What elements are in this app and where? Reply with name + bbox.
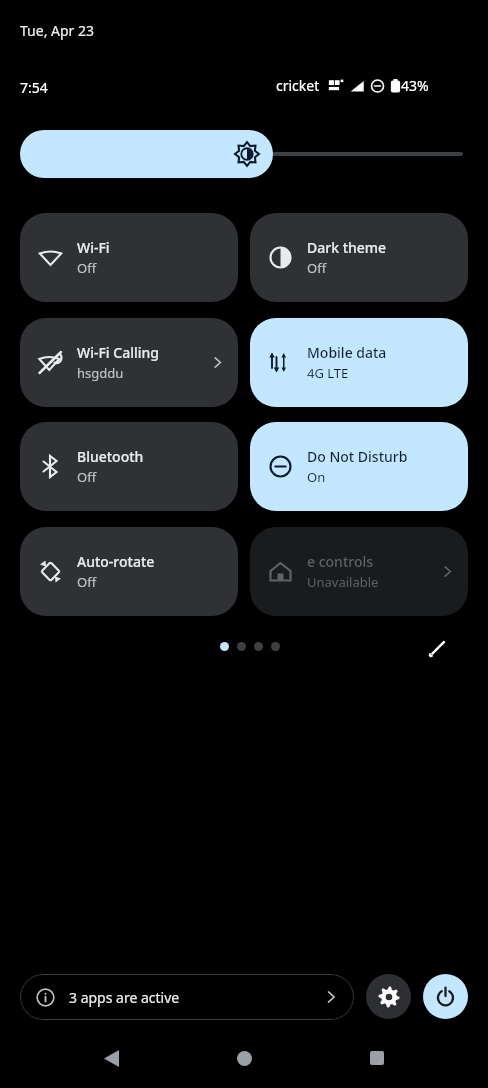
button[interactable]: Settings xyxy=(366,974,411,1019)
button[interactable]: Edit tiles xyxy=(420,630,456,666)
button[interactable]: e controls xyxy=(250,527,468,616)
button[interactable]: Power xyxy=(423,974,468,1019)
staticText: hsgddu xyxy=(77,364,124,382)
button[interactable]: Home xyxy=(211,1036,277,1080)
button[interactable]: Wi-Fi Calling xyxy=(20,318,238,407)
button[interactable]: Back xyxy=(78,1036,144,1080)
staticText: Wi-Fi xyxy=(77,238,110,257)
staticText: Do Not Disturb xyxy=(307,447,408,466)
staticText: Off xyxy=(77,573,97,591)
staticText: Off xyxy=(77,259,97,277)
button[interactable]: Do Not Disturb xyxy=(250,422,468,511)
staticText: 3 apps are active xyxy=(69,988,180,1007)
staticText: Tue, Apr 23 xyxy=(20,21,95,40)
staticText: 7:54 xyxy=(20,78,48,97)
staticText: Mobile data xyxy=(307,343,387,362)
button[interactable]: Auto-rotate xyxy=(20,527,238,616)
button[interactable]: Mobile data xyxy=(250,318,468,407)
staticText: Auto-rotate xyxy=(77,552,155,571)
staticText: Bluetooth xyxy=(77,447,144,466)
button[interactable]: Recent apps xyxy=(344,1036,410,1080)
staticText: cricket xyxy=(276,76,320,95)
button[interactable]: Wi-Fi xyxy=(20,213,238,302)
staticText: 43% xyxy=(401,76,429,95)
button[interactable]: 3 apps are active xyxy=(20,974,354,1020)
staticText: On xyxy=(307,468,326,486)
staticText: Unavailable xyxy=(307,573,379,591)
staticText: Off xyxy=(77,468,97,486)
button[interactable]: Brightness xyxy=(20,130,468,178)
button[interactable]: Dark theme xyxy=(250,213,468,302)
button[interactable]: Bluetooth xyxy=(20,422,238,511)
staticText: Off xyxy=(307,259,327,277)
staticText: e controls xyxy=(307,552,374,571)
staticText: 4G LTE xyxy=(307,364,349,382)
staticText: Wi-Fi Calling xyxy=(77,343,159,362)
staticText: Dark theme xyxy=(307,238,387,257)
